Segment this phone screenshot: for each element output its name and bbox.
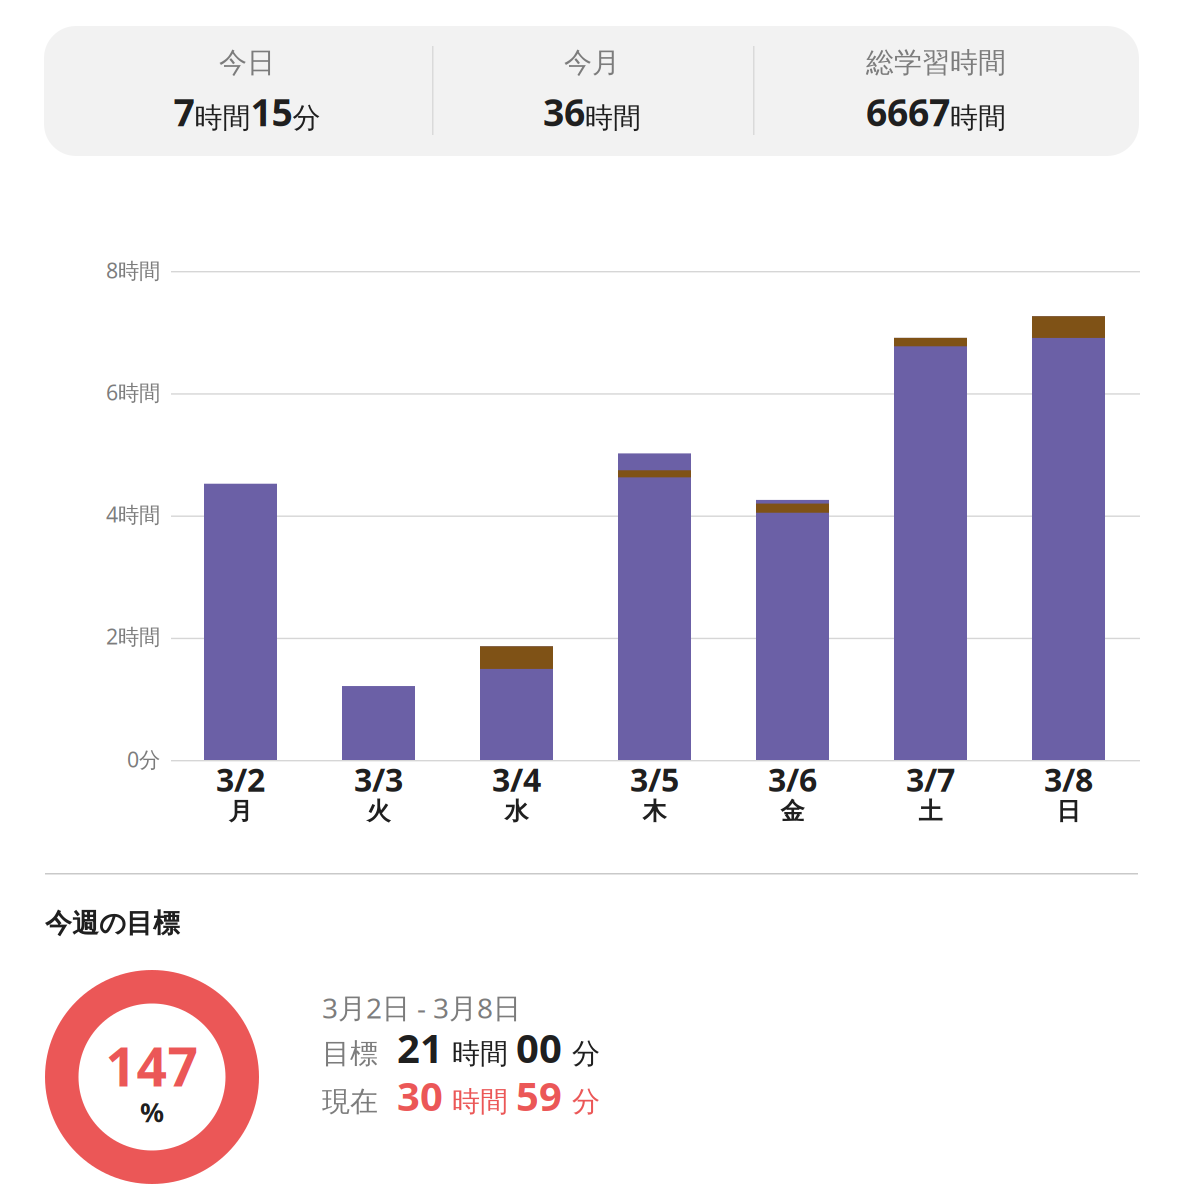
staticText: 7時間15分 bbox=[173, 87, 320, 136]
staticText: 59 bbox=[516, 1069, 562, 1122]
button[interactable]: 3/5 bbox=[585, 757, 723, 827]
staticText: 2時間 bbox=[106, 622, 160, 650]
button[interactable]: 3/4 bbox=[447, 757, 585, 827]
staticText: 3/2 bbox=[216, 758, 265, 800]
staticText: 金 bbox=[780, 796, 804, 826]
staticText: 147 bbox=[105, 1030, 198, 1101]
staticText: 総学習時間 bbox=[866, 45, 1006, 80]
staticText: 36時間 bbox=[543, 87, 641, 136]
staticText: 21 bbox=[397, 1021, 443, 1074]
staticText: 今日 bbox=[219, 45, 275, 80]
staticText: 0分 bbox=[127, 745, 160, 773]
staticText: 3/8 bbox=[1044, 758, 1093, 800]
staticText: 日 bbox=[1056, 796, 1080, 826]
staticText: 土 bbox=[918, 796, 942, 826]
staticText: 3/3 bbox=[354, 758, 403, 800]
staticText: 3月2日 - 3月8日 bbox=[322, 989, 521, 1026]
staticText: 今月 bbox=[564, 45, 620, 80]
staticText: 30 bbox=[397, 1069, 443, 1122]
staticText: 8時間 bbox=[106, 256, 160, 284]
staticText: 3/4 bbox=[492, 758, 541, 800]
staticText: 6時間 bbox=[106, 378, 160, 406]
staticText: 3/5 bbox=[630, 758, 679, 800]
staticText: 現在 bbox=[322, 1085, 378, 1119]
staticText: 6667時間 bbox=[866, 87, 1006, 136]
staticText: 時間 bbox=[452, 1037, 508, 1071]
staticText: 3/7 bbox=[906, 758, 955, 800]
staticText: 水 bbox=[504, 796, 528, 826]
staticText: 分 bbox=[572, 1037, 600, 1071]
staticText: % bbox=[140, 1094, 164, 1130]
button[interactable]: 3/7 bbox=[861, 757, 999, 827]
button[interactable]: 今週の目標 147% bbox=[45, 970, 259, 1184]
staticText: 火 bbox=[366, 796, 390, 826]
button[interactable]: 3/8 bbox=[999, 757, 1137, 827]
button[interactable]: 3/6 bbox=[723, 757, 861, 827]
button[interactable]: 3/2 bbox=[171, 757, 309, 827]
staticText: 3/6 bbox=[768, 758, 817, 800]
staticText: 月 bbox=[228, 796, 252, 826]
button[interactable]: 今日 bbox=[44, 26, 432, 156]
staticText: 分 bbox=[572, 1085, 600, 1119]
button[interactable]: 今月 bbox=[433, 26, 753, 156]
staticText: 目標 bbox=[322, 1037, 378, 1071]
button[interactable]: 3/3 bbox=[309, 757, 447, 827]
staticText: 今週の目標 bbox=[45, 907, 180, 940]
button[interactable]: 総学習時間 bbox=[754, 26, 1139, 156]
staticText: 時間 bbox=[452, 1085, 508, 1119]
staticText: 木 bbox=[642, 796, 666, 826]
staticText: 4時間 bbox=[106, 500, 160, 528]
staticText: 00 bbox=[516, 1021, 562, 1074]
